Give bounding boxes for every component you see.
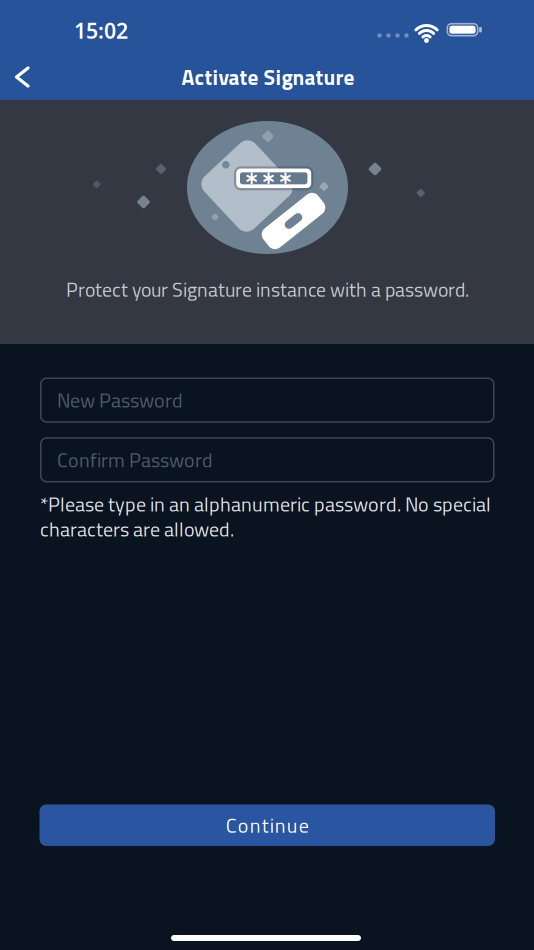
staticText: 15:02 xyxy=(74,16,128,45)
staticText: Confirm Password xyxy=(57,445,213,475)
button[interactable]: Continue xyxy=(39,804,495,846)
button[interactable]: Back xyxy=(0,55,44,99)
button[interactable]: Confirm Password xyxy=(40,437,494,482)
staticText: New Password xyxy=(57,385,183,415)
staticText: *Please type in an alphanumeric password… xyxy=(40,489,491,544)
staticText: Protect your Signature instance with a p… xyxy=(66,274,469,304)
staticText: Activate Signature xyxy=(181,61,354,93)
staticText: Continue xyxy=(226,810,309,840)
button[interactable]: New Password xyxy=(40,377,494,423)
